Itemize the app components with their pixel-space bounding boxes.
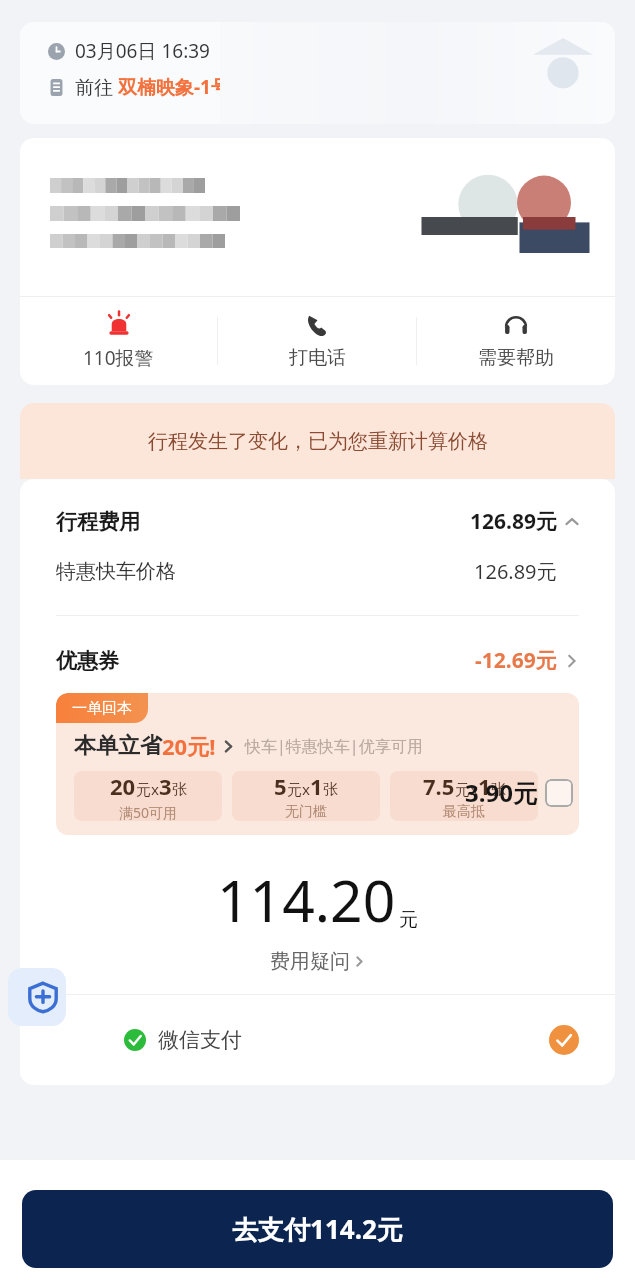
staticText: 元x: [455, 779, 478, 799]
staticText: 费用疑问: [270, 949, 350, 974]
button[interactable]: 去支付114.2元: [22, 1190, 613, 1268]
staticText: 126.89元: [470, 507, 557, 536]
button[interactable]: 优惠券: [56, 646, 579, 675]
staticText: 一单回本: [72, 699, 132, 718]
staticText: 03月06日 16:39: [75, 38, 210, 64]
staticText: 本单立省: [74, 732, 162, 760]
staticText: 元x: [136, 779, 159, 799]
staticText: 需要帮助: [478, 346, 554, 370]
button[interactable]: 03月06日 16:39: [20, 22, 615, 124]
staticText: 行程费用: [56, 509, 140, 535]
staticText: 快车|特惠快车|优享可用: [245, 735, 423, 757]
button[interactable]: 选择: [545, 779, 573, 807]
staticText: 元x: [287, 779, 310, 799]
staticText: 张: [323, 780, 338, 799]
staticText: 20: [110, 771, 136, 801]
staticText: 最高抵: [443, 803, 485, 821]
staticText: 无门槛: [285, 803, 327, 821]
staticText: 行程发生了变化，已为您重新计算价格: [148, 429, 488, 454]
staticText: 110报警: [83, 345, 154, 371]
button[interactable]: 打电话: [218, 297, 416, 385]
staticText: 3.90元: [465, 776, 537, 809]
staticText: 7.5: [423, 771, 455, 801]
button[interactable]: 行程费用: [56, 507, 579, 536]
button[interactable]: 一单回本: [56, 693, 579, 835]
staticText: 1: [310, 771, 323, 801]
staticText: -12.69元: [475, 646, 557, 675]
button[interactable]: 安全保障: [8, 968, 66, 1026]
button[interactable]: 微信支付: [56, 995, 579, 1085]
staticText: 双楠映象-1号: [118, 74, 230, 100]
staticText: 前往: [75, 74, 118, 100]
staticText: 去支付114.2元: [232, 1211, 403, 1247]
staticText: 特惠快车价格: [56, 559, 176, 584]
staticText: 张: [172, 780, 187, 799]
staticText: 元: [399, 908, 418, 932]
button[interactable]: 5: [232, 771, 380, 821]
staticText: 114.20: [217, 861, 396, 939]
button[interactable]: 需要帮助: [417, 297, 615, 385]
staticText: 20元!: [162, 731, 216, 761]
button[interactable]: 110报警: [20, 297, 217, 385]
staticText: 微信支付: [158, 1027, 242, 1053]
button[interactable]: 7.5: [390, 771, 538, 821]
staticText: 126.89元: [474, 558, 557, 585]
button[interactable]: 费用疑问: [20, 949, 615, 974]
button[interactable]: 20: [74, 771, 222, 821]
staticText: 1: [478, 771, 491, 801]
staticText: 张: [491, 780, 506, 799]
staticText: 优惠券: [56, 648, 119, 674]
staticText: 5: [274, 771, 287, 801]
staticText: 打电话: [289, 346, 346, 370]
staticText: 满50可用: [119, 803, 178, 821]
staticText: 3: [159, 771, 172, 801]
